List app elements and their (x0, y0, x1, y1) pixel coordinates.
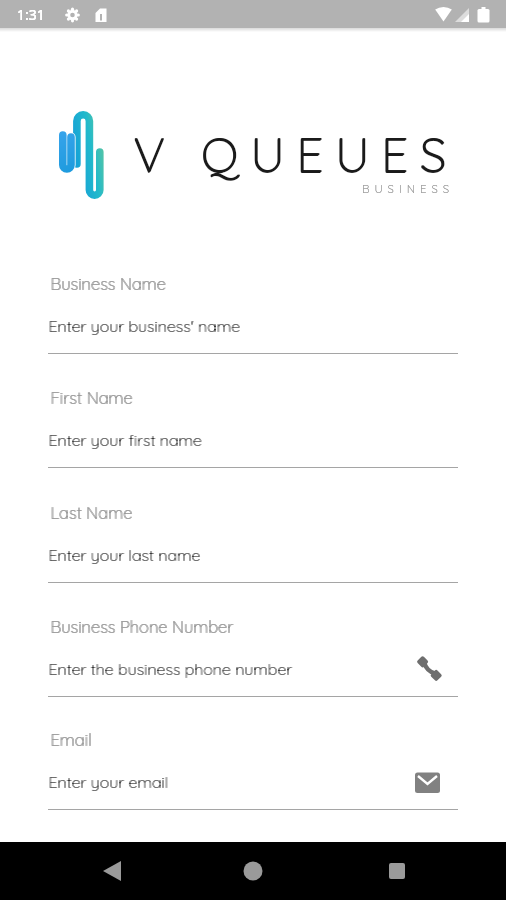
staticText: Business Phone Number (51, 616, 234, 637)
button[interactable] (40, 381, 466, 473)
staticText: BUSINESS (362, 181, 455, 195)
button[interactable] (372, 846, 422, 896)
button[interactable] (40, 267, 466, 359)
button[interactable] (228, 846, 278, 896)
staticText: Email (51, 729, 93, 750)
staticText: Enter the business phone number (48, 659, 292, 679)
staticText: Enter your first name (48, 430, 202, 450)
button[interactable] (40, 496, 466, 588)
staticText: Business Name (50, 273, 166, 294)
staticText: 1:31 (17, 5, 45, 24)
staticText: V QUEUES (133, 125, 458, 185)
staticText: Enter your email (48, 772, 168, 792)
staticText: Email (50, 729, 92, 750)
staticText: Enter the business phone number (49, 659, 293, 679)
staticText: Enter your last name (48, 545, 201, 565)
staticText: Last Name (50, 502, 132, 523)
staticText: Last Name (51, 502, 133, 523)
staticText: Business Name (51, 273, 167, 294)
staticText: V QUEUES (133, 124, 458, 184)
staticText: V QUEUES (134, 124, 459, 184)
staticText: Enter your business' name (49, 316, 241, 336)
staticText: Enter your last name (49, 545, 202, 565)
staticText: BUSINESS (362, 181, 455, 195)
staticText: Enter your first name (49, 430, 203, 450)
staticText: Business Phone Number (50, 616, 233, 637)
staticText: Enter your email (49, 772, 169, 792)
button[interactable] (40, 723, 466, 815)
staticText: First Name (51, 387, 134, 408)
button[interactable] (40, 610, 466, 702)
staticText: Enter your business' name (48, 316, 240, 336)
staticText: First Name (50, 387, 133, 408)
staticText: 1:31 (17, 5, 45, 24)
button[interactable] (88, 846, 138, 896)
